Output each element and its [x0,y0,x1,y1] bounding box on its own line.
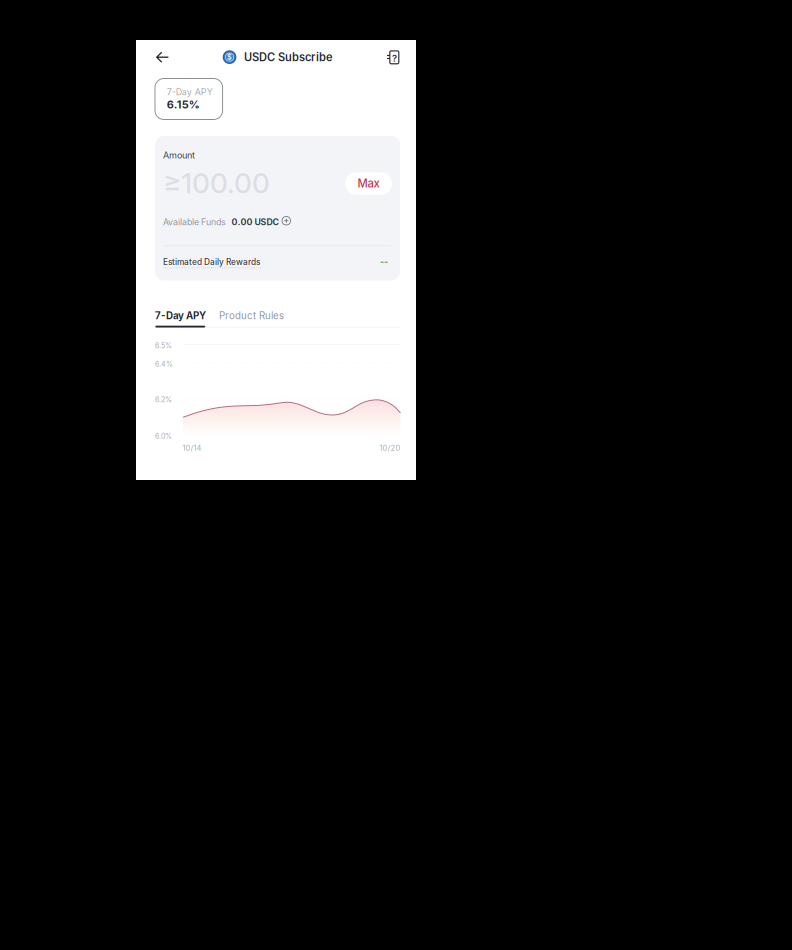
staticText: 6.4% [155,360,173,368]
button[interactable]: Estimated Daily Rewards [163,254,262,270]
staticText: USDC Subscribe [244,50,333,64]
staticText: 10/20 [379,444,400,453]
staticText: Product Rules [219,310,284,322]
staticText: 7-Day APY [167,86,213,97]
staticText: ≥100.00 [163,166,270,200]
button[interactable]: Help [381,45,404,69]
staticText: 6.2% [155,395,172,404]
staticText: 6.15% [167,98,200,111]
staticText: Estimated Daily Rewards [163,257,260,267]
button[interactable]: Back [151,46,174,68]
staticText: 0.00 USDC [231,217,279,227]
button[interactable]: 7-Day APY [155,307,206,325]
button[interactable]: Product Rules [219,307,284,325]
staticText: Max [357,177,379,190]
staticText: 7-Day APY [155,310,206,322]
staticText: 10/14 [182,444,201,453]
button[interactable]: Add funds [277,211,295,230]
staticText: 6.5% [155,341,172,350]
button[interactable]: Max [345,172,392,195]
staticText: Amount [163,150,195,161]
staticText: Available Funds [163,217,226,227]
staticText: -- [380,256,388,267]
staticText: 6.0% [155,432,172,440]
